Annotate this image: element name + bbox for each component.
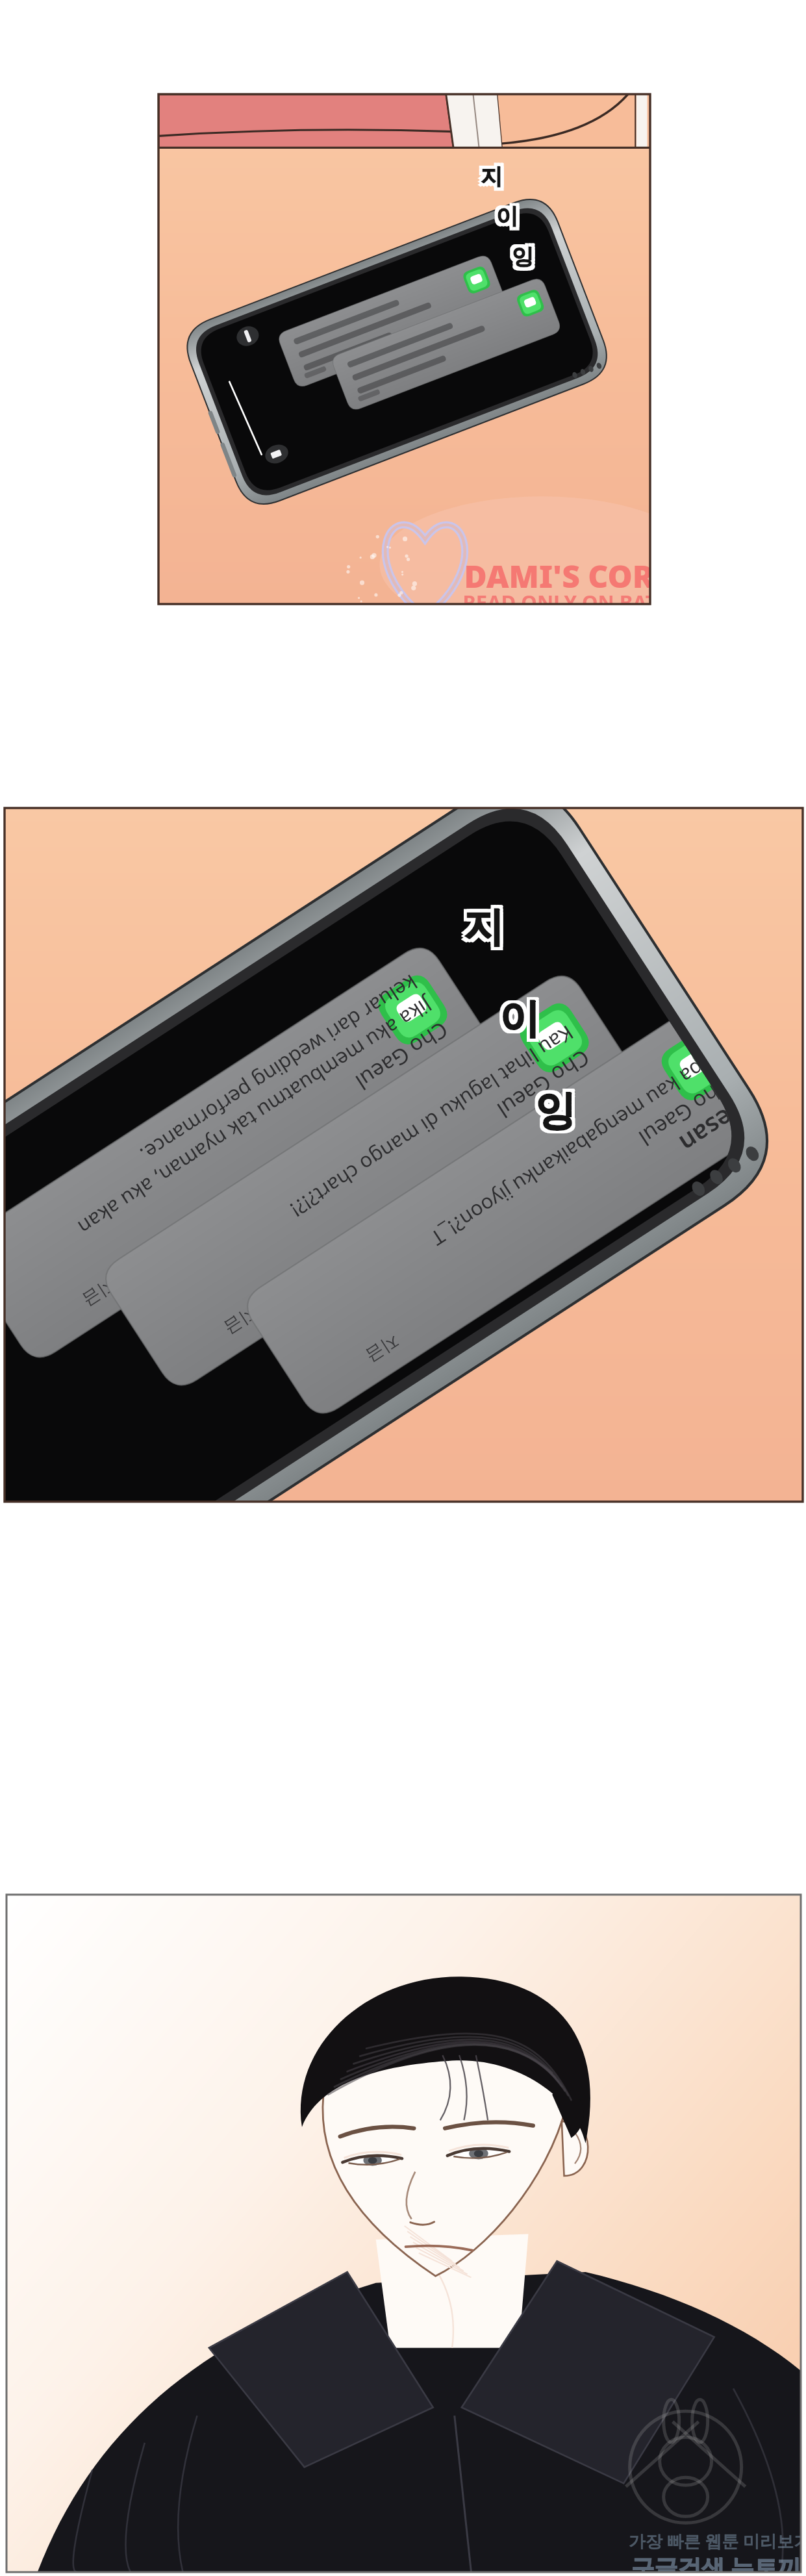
button[interactable]: Webtoon episode page [0, 0, 806, 2576]
